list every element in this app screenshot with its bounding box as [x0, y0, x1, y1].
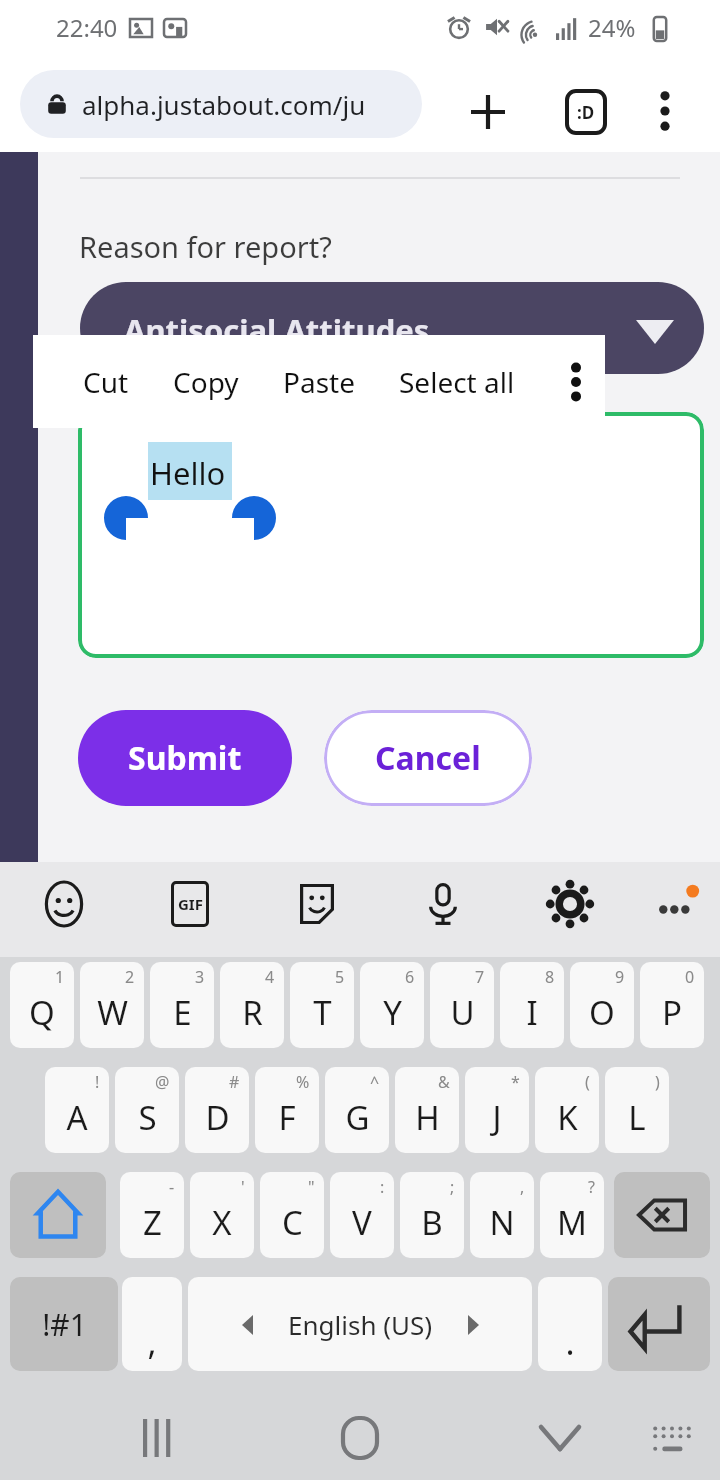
button[interactable]: Copy — [157, 353, 255, 411]
button[interactable]: More options — [561, 358, 591, 406]
staticText: , — [147, 1319, 157, 1365]
staticText: O — [589, 990, 615, 1035]
button[interactable]: Tabs — [550, 76, 622, 148]
button[interactable]: Paste — [267, 353, 371, 411]
button[interactable]: 7 — [430, 962, 494, 1048]
button[interactable]: Hello — [78, 412, 704, 658]
button[interactable]: More options — [630, 76, 700, 146]
button[interactable]: ; — [400, 1172, 464, 1258]
staticText: 9 — [615, 966, 625, 988]
button[interactable]: # — [185, 1067, 249, 1153]
staticText: Paste — [283, 363, 355, 401]
button[interactable]: Cancel — [324, 710, 532, 806]
staticText: GIF — [178, 894, 203, 914]
staticText: 7 — [475, 966, 485, 988]
button[interactable]: 3 — [150, 962, 214, 1048]
staticText: E — [173, 990, 192, 1035]
button[interactable]: 1 — [10, 962, 74, 1048]
staticText: L — [628, 1095, 646, 1140]
staticText: A — [66, 1095, 88, 1140]
staticText: 5 — [335, 966, 345, 988]
button[interactable]: ( — [535, 1067, 599, 1153]
staticText: P — [662, 990, 682, 1035]
button[interactable]: Home — [322, 1400, 398, 1476]
button[interactable]: . — [538, 1277, 602, 1371]
button[interactable]: ' — [190, 1172, 254, 1258]
button[interactable]: , — [122, 1277, 182, 1371]
staticText: Y — [383, 990, 402, 1035]
button[interactable]: Settings — [536, 870, 604, 938]
button[interactable]: alpha.justabout.com/ju — [20, 70, 422, 138]
button[interactable]: Cut — [67, 353, 145, 411]
button[interactable]: Hide keyboard — [522, 1400, 598, 1476]
staticText: ; — [450, 1176, 455, 1198]
button[interactable]: : — [330, 1172, 394, 1258]
staticText: Cancel — [375, 736, 481, 780]
staticText: T — [313, 990, 332, 1035]
button[interactable]: - — [120, 1172, 184, 1258]
staticText: ? — [588, 1176, 595, 1198]
button[interactable]: Voice input — [409, 870, 477, 938]
staticText: Cut — [83, 363, 129, 401]
staticText: 24% — [588, 11, 636, 44]
button[interactable]: " — [260, 1172, 324, 1258]
staticText: 2 — [125, 966, 135, 988]
button[interactable]: Backspace — [614, 1172, 710, 1258]
staticText: ^ — [370, 1071, 380, 1093]
button[interactable]: Stickers — [283, 870, 351, 938]
button[interactable]: Shift — [10, 1172, 106, 1258]
button[interactable]: 0 — [640, 962, 704, 1048]
staticText: * — [511, 1071, 520, 1093]
button[interactable]: Change keyboard — [634, 1400, 710, 1476]
staticText: D — [205, 1095, 230, 1140]
staticText: W — [97, 990, 128, 1035]
staticText: N — [489, 1200, 515, 1245]
staticText: F — [278, 1095, 296, 1140]
staticText: X — [212, 1200, 232, 1245]
button[interactable]: GIF — [156, 870, 224, 938]
button[interactable]: 2 — [80, 962, 144, 1048]
button[interactable]: 4 — [220, 962, 284, 1048]
staticText: K — [557, 1095, 578, 1140]
button[interactable]: Recents — [120, 1400, 196, 1476]
button[interactable]: & — [395, 1067, 459, 1153]
button[interactable]: Antisocial Attitudes — [80, 282, 704, 374]
button[interactable]: 8 — [500, 962, 564, 1048]
staticText: # — [229, 1071, 240, 1093]
staticText: 8 — [545, 966, 555, 988]
button[interactable]: 5 — [290, 962, 354, 1048]
button[interactable]: @ — [115, 1067, 179, 1153]
button[interactable]: Emoji — [30, 870, 98, 938]
button[interactable]: More — [644, 870, 712, 938]
staticText: ' — [241, 1176, 245, 1198]
button[interactable]: ) — [605, 1067, 669, 1153]
button[interactable]: 6 — [360, 962, 424, 1048]
staticText: G — [345, 1095, 370, 1140]
staticText: 6 — [405, 966, 415, 988]
button[interactable]: Enter — [608, 1277, 710, 1371]
staticText: Submit — [128, 736, 242, 780]
button[interactable]: , — [470, 1172, 534, 1258]
staticText: alpha.justabout.com/ju — [82, 87, 366, 122]
button[interactable]: English (US) — [188, 1277, 532, 1371]
button[interactable]: New tab — [452, 76, 524, 148]
button[interactable]: ^ — [325, 1067, 389, 1153]
button[interactable]: Submit — [78, 710, 292, 806]
button[interactable]: !#1 — [10, 1277, 118, 1371]
button[interactable]: ! — [45, 1067, 109, 1153]
staticText: ( — [585, 1071, 590, 1093]
button[interactable]: % — [255, 1067, 319, 1153]
button[interactable]: Select all — [383, 353, 531, 411]
staticText: . — [565, 1319, 575, 1365]
staticText: !#1 — [42, 1304, 87, 1345]
button[interactable]: ? — [540, 1172, 604, 1258]
button[interactable]: * — [465, 1067, 529, 1153]
staticText: & — [438, 1071, 450, 1093]
staticText: English (US) — [288, 1307, 433, 1342]
button[interactable]: 9 — [570, 962, 634, 1048]
staticText: Z — [143, 1200, 162, 1245]
staticText: Q — [29, 990, 55, 1035]
staticText: J — [492, 1095, 502, 1140]
staticText: 4 — [265, 966, 275, 988]
staticText: 3 — [195, 966, 205, 988]
